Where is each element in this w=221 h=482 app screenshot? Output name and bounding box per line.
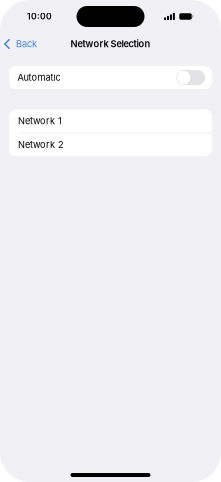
staticText: Network 2: [18, 139, 64, 150]
staticText: 10:00: [27, 11, 52, 22]
button[interactable]: Network 2: [9, 133, 212, 156]
button[interactable]: Back: [0, 35, 37, 52]
button[interactable]: Network 1: [9, 109, 212, 132]
staticText: Network Selection: [70, 38, 150, 50]
staticText: Network 1: [18, 115, 62, 126]
button[interactable]: Automatic: [176, 70, 205, 85]
staticText: Automatic: [17, 72, 60, 83]
staticText: Back: [16, 38, 37, 49]
